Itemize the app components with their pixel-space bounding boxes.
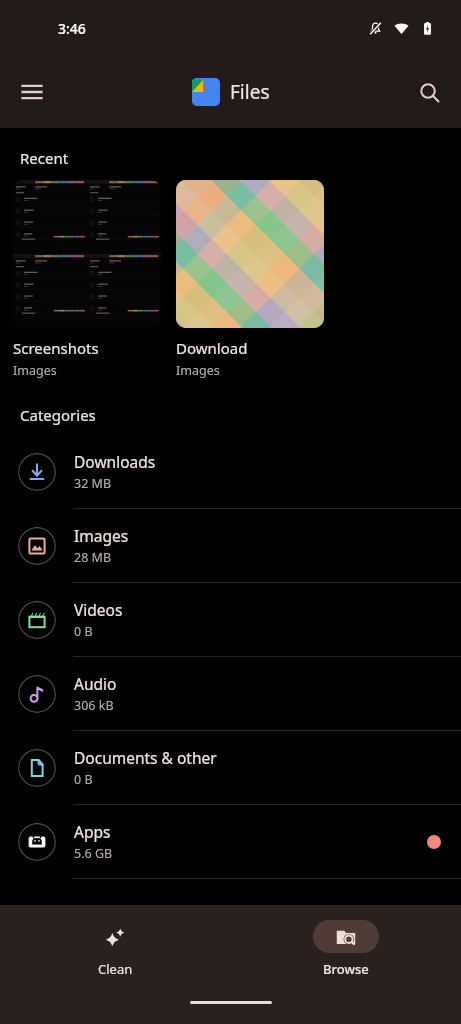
staticText: Audio bbox=[74, 673, 117, 694]
staticText: Videos bbox=[74, 599, 123, 620]
staticText: Apps bbox=[74, 821, 111, 842]
staticText: Images bbox=[13, 362, 57, 379]
staticText: Download bbox=[176, 338, 248, 358]
staticText: 28 MB bbox=[74, 549, 112, 566]
staticText: Images bbox=[176, 362, 220, 379]
button[interactable]: Downloads bbox=[0, 435, 461, 508]
staticText: 3:46 bbox=[58, 19, 86, 38]
button[interactable]: Audio bbox=[0, 657, 461, 730]
button[interactable]: Search bbox=[407, 70, 451, 114]
staticText: 5.6 GB bbox=[74, 845, 113, 862]
staticText: Screenshots bbox=[13, 338, 99, 358]
staticText: 306 kB bbox=[74, 697, 114, 714]
staticText: Images bbox=[74, 525, 129, 546]
button[interactable]: Browse bbox=[230, 914, 461, 984]
staticText: Recent bbox=[20, 148, 69, 168]
staticText: Clean bbox=[98, 960, 133, 978]
staticText: 0 B bbox=[74, 771, 93, 788]
button[interactable]: Documents & other bbox=[0, 731, 461, 804]
button[interactable]: Download bbox=[175, 180, 327, 379]
button[interactable]: Videos bbox=[0, 583, 461, 656]
staticText: Categories bbox=[20, 405, 96, 425]
staticText: Downloads bbox=[74, 451, 156, 472]
staticText: 32 MB bbox=[74, 475, 112, 492]
staticText: Browse bbox=[323, 960, 369, 978]
button[interactable]: Clean bbox=[0, 914, 230, 984]
staticText: Documents & other bbox=[74, 747, 217, 768]
button[interactable]: Screenshots bbox=[12, 180, 164, 379]
button[interactable]: Apps bbox=[0, 805, 461, 878]
staticText: Files bbox=[230, 79, 270, 105]
button[interactable]: Open navigation menu bbox=[10, 70, 54, 114]
button[interactable]: Images bbox=[0, 509, 461, 582]
staticText: 0 B bbox=[74, 623, 93, 640]
